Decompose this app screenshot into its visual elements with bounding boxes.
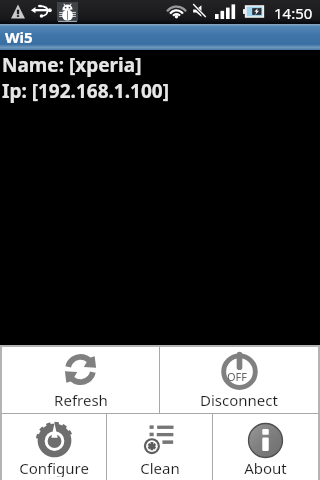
staticText: Refresh: [54, 390, 108, 410]
button[interactable]: About: [213, 414, 318, 480]
button[interactable]: Refresh: [2, 347, 159, 413]
staticText: Disconnect: [200, 390, 278, 410]
staticText: Name: [xperia]: [2, 52, 142, 78]
staticText: About: [244, 458, 287, 477]
button[interactable]: Configure: [2, 414, 106, 480]
staticText: Ip: [192.168.1.100]: [2, 78, 169, 104]
button[interactable]: Clean: [107, 414, 212, 480]
other: USB connected: [30, 4, 53, 19]
other: Warning: [11, 4, 25, 19]
staticText: Configure: [19, 458, 89, 477]
staticText: Wi5: [5, 27, 33, 47]
staticText: 14:50: [274, 3, 313, 23]
button[interactable]: OFF: [160, 347, 318, 413]
other: USB debugging: [57, 2, 78, 22]
staticText: Clean: [140, 458, 180, 477]
staticText: OFF: [227, 369, 248, 384]
